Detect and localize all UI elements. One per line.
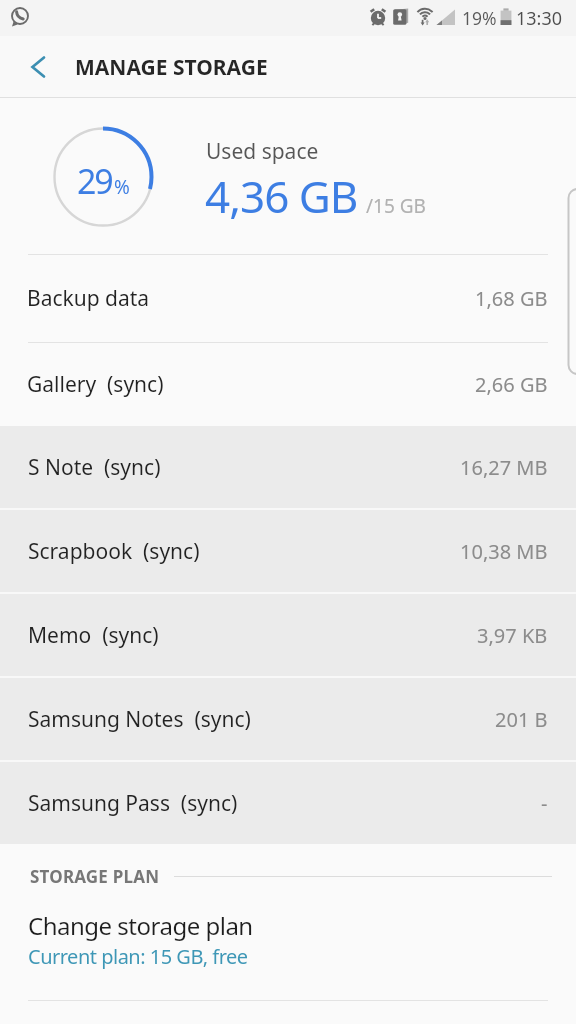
staticText: Backup data: [27, 284, 150, 313]
staticText: 2,66 GB: [475, 371, 548, 398]
staticText: Memo (sync): [28, 621, 159, 650]
staticText: %: [114, 174, 130, 200]
staticText: S Note (sync): [28, 453, 161, 482]
staticText: Samsung Pass (sync): [28, 789, 238, 818]
button[interactable]: Backup data: [0, 255, 576, 342]
staticText: 16,27 MB: [460, 454, 548, 481]
staticText: Gallery (sync): [27, 370, 164, 399]
staticText: 4,36 GB: [205, 166, 358, 226]
staticText: 19%: [462, 6, 497, 30]
staticText: MANAGE STORAGE: [75, 53, 268, 82]
staticText: 1,68 GB: [475, 285, 548, 312]
button[interactable]: Memo (sync): [0, 594, 576, 676]
staticText: /15 GB: [366, 193, 426, 219]
staticText: Used space: [206, 137, 319, 166]
staticText: Scrapbook (sync): [28, 537, 200, 566]
staticText: 13:30: [516, 6, 563, 31]
staticText: Samsung Notes (sync): [28, 705, 251, 734]
staticText: STORAGE PLAN: [30, 865, 160, 888]
button[interactable]: Change storage plan: [0, 908, 576, 1000]
staticText: 29: [77, 158, 112, 204]
staticText: 3,97 KB: [477, 622, 548, 649]
button[interactable]: [12, 41, 64, 93]
staticText: 10,38 MB: [460, 538, 548, 565]
button[interactable]: S Note (sync): [0, 426, 576, 508]
button[interactable]: Samsung Pass (sync): [0, 762, 576, 844]
button[interactable]: Scrapbook (sync): [0, 510, 576, 592]
staticText: 201 B: [495, 706, 548, 733]
staticText: -: [541, 790, 548, 817]
button[interactable]: Gallery (sync): [0, 343, 576, 426]
staticText: Current plan: 15 GB, free: [28, 943, 248, 970]
button[interactable]: Samsung Notes (sync): [0, 678, 576, 760]
staticText: Change storage plan: [28, 909, 253, 942]
